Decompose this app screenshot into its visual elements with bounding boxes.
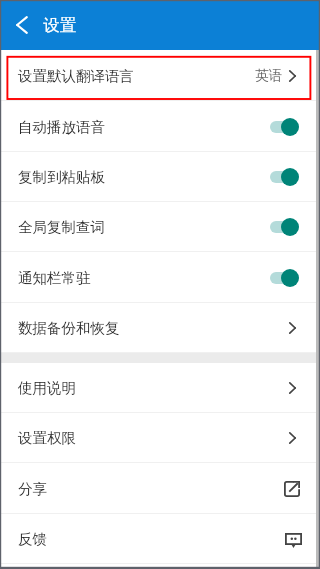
button[interactable]: 设置默认翻译语言	[0, 50, 320, 101]
staticText: 使用说明	[18, 379, 76, 397]
staticText: 设置权限	[18, 429, 76, 447]
button[interactable]: 使用说明	[0, 363, 320, 413]
button[interactable]: Share	[284, 481, 300, 497]
staticText: 全局复制查词	[18, 218, 105, 236]
staticText: 复制到粘贴板	[18, 168, 105, 186]
staticText: 分享	[18, 480, 47, 498]
staticText: 设置默认翻译语言	[18, 67, 134, 85]
button[interactable]: 反馈	[0, 514, 320, 564]
button[interactable]: 数据备份和恢复	[0, 303, 320, 353]
staticText: 通知栏常驻	[18, 269, 91, 287]
staticText: 反馈	[18, 530, 47, 548]
button[interactable]: 复制到粘贴板	[0, 152, 320, 202]
button[interactable]: 自动播放语音	[0, 101, 320, 152]
button[interactable]: 全局复制查词	[0, 202, 320, 252]
staticText: 数据备份和恢复	[18, 319, 120, 337]
button[interactable]: Back	[0, 0, 44, 50]
staticText: 设置	[43, 15, 76, 36]
button[interactable]: 通知栏常驻	[0, 252, 320, 303]
staticText: 英语	[255, 67, 282, 84]
button[interactable]: Feedback	[285, 533, 302, 548]
button[interactable]: 设置权限	[0, 413, 320, 463]
staticText: 自动播放语音	[18, 118, 105, 136]
button[interactable]: 分享	[0, 463, 320, 514]
